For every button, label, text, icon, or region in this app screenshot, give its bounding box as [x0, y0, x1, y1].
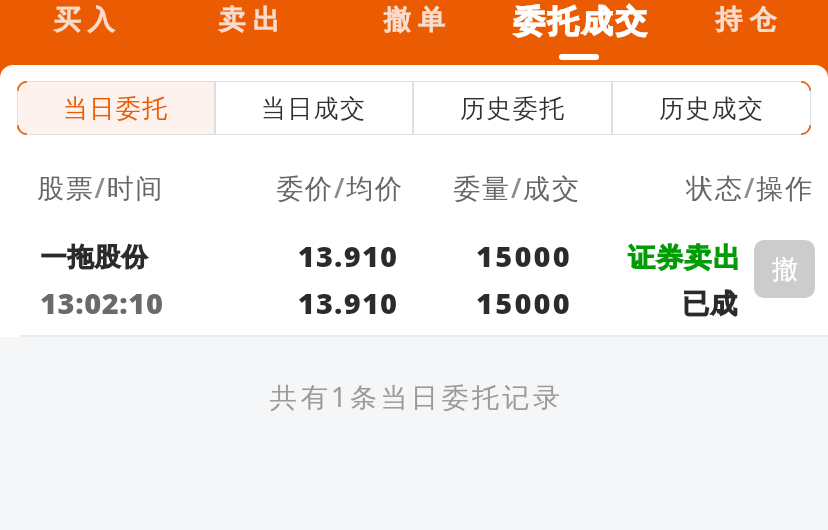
staticText: 股票/时间	[37, 169, 165, 203]
staticText: 当日委托	[63, 93, 169, 124]
button[interactable]: 当日委托	[18, 82, 214, 134]
staticText: 卖出	[215, 3, 283, 37]
staticText: 委托成交	[512, 2, 648, 41]
button[interactable]: 一拖股份	[0, 205, 828, 335]
staticText: 13.910	[248, 283, 448, 322]
button[interactable]: 撤单	[754, 240, 815, 298]
staticText: 15000	[424, 283, 624, 322]
staticText: 状态/操作	[686, 169, 814, 203]
button[interactable]: 委托成交	[496, 0, 662, 65]
staticText: 一拖股份	[40, 241, 148, 274]
staticText: 已成	[682, 287, 739, 321]
button[interactable]: 当日成交	[216, 82, 412, 134]
staticText: 15000	[424, 236, 624, 275]
staticText: 当日成交	[261, 93, 367, 124]
staticText: 共有1条当日委托记录	[270, 378, 564, 415]
button[interactable]: 买入	[0, 0, 165, 65]
button[interactable]: 历史委托	[414, 82, 611, 134]
staticText: 持仓	[712, 3, 780, 37]
staticText: 委量/成交	[453, 169, 581, 203]
staticText: 撤单	[380, 3, 448, 37]
staticText: 买入	[50, 3, 118, 37]
staticText: 证券卖出	[628, 241, 742, 275]
staticText: 撤	[772, 253, 798, 286]
button[interactable]: 持仓	[662, 0, 828, 65]
staticText: 13.910	[248, 236, 448, 275]
button[interactable]: 历史成交	[613, 82, 810, 134]
staticText: 历史成交	[659, 93, 765, 124]
staticText: 历史委托	[460, 93, 566, 124]
button[interactable]: 撤单	[330, 0, 496, 65]
staticText: 委价/均价	[276, 169, 404, 203]
staticText: 13:02:10	[40, 283, 164, 322]
button[interactable]: 卖出	[165, 0, 330, 65]
